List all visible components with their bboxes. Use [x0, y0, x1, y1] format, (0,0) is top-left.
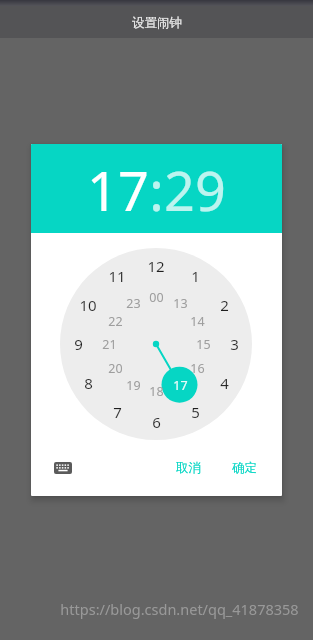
button[interactable]: 5: [178, 401, 212, 423]
button[interactable]: 6: [139, 411, 173, 433]
button[interactable]: 13: [163, 292, 197, 314]
staticText: 23: [126, 295, 141, 312]
staticText: 设置闹钟: [132, 15, 182, 31]
button[interactable]: 21: [92, 333, 126, 355]
button[interactable]: 22: [98, 310, 132, 332]
staticText: 取消: [176, 460, 201, 476]
button[interactable]: 20: [98, 357, 132, 379]
button[interactable]: 1: [178, 265, 212, 287]
button[interactable]: 取消: [161, 451, 216, 485]
staticText: 1: [191, 266, 200, 286]
staticText: 12: [147, 256, 165, 276]
staticText: 14: [190, 313, 205, 330]
staticText: 3: [230, 334, 239, 354]
button[interactable]: 11: [100, 265, 134, 287]
button[interactable]: 2: [207, 294, 241, 316]
staticText: 22: [108, 313, 123, 330]
staticText: 00: [149, 289, 164, 306]
staticText: 13: [173, 295, 188, 312]
button[interactable]: 3: [217, 333, 251, 355]
staticText: 2: [220, 295, 229, 315]
staticText: 6: [152, 412, 161, 432]
button[interactable]: 8: [71, 372, 105, 394]
staticText: 21: [102, 336, 117, 353]
staticText: :: [149, 153, 164, 227]
staticText: 8: [84, 373, 93, 393]
button[interactable]: 19: [116, 374, 150, 396]
staticText: 19: [126, 377, 141, 394]
staticText: 9: [74, 334, 83, 354]
staticText: 确定: [232, 460, 257, 476]
button[interactable]: 29: [164, 153, 226, 227]
staticText: 7: [113, 402, 122, 422]
staticText: 16: [190, 360, 205, 377]
staticText: 5: [191, 402, 200, 422]
staticText: 15: [196, 336, 211, 353]
button[interactable]: 15: [186, 333, 220, 355]
staticText: 20: [108, 360, 123, 377]
button[interactable]: 23: [116, 292, 150, 314]
staticText: https://blog.csdn.net/qq_41878358: [60, 599, 299, 619]
button[interactable]: 16: [180, 357, 214, 379]
button[interactable]: 17: [87, 153, 149, 227]
staticText: 10: [79, 295, 97, 315]
staticText: 11: [108, 266, 126, 286]
button[interactable]: Switch to keyboard input: [50, 455, 76, 481]
staticText: 17: [173, 377, 188, 394]
button[interactable]: 12: [139, 255, 173, 277]
button[interactable]: 4: [207, 372, 241, 394]
staticText: 29: [164, 153, 226, 227]
button[interactable]: 10: [71, 294, 105, 316]
button[interactable]: 00: [139, 286, 173, 308]
button[interactable]: 14: [180, 310, 214, 332]
button[interactable]: 18: [139, 380, 173, 402]
button[interactable]: 17: [163, 374, 197, 396]
staticText: 17: [87, 153, 149, 227]
button[interactable]: 7: [100, 401, 134, 423]
button[interactable]: 确定: [216, 451, 273, 485]
button[interactable]: 9: [61, 333, 95, 355]
staticText: 4: [220, 373, 229, 393]
staticText: 18: [149, 383, 164, 400]
